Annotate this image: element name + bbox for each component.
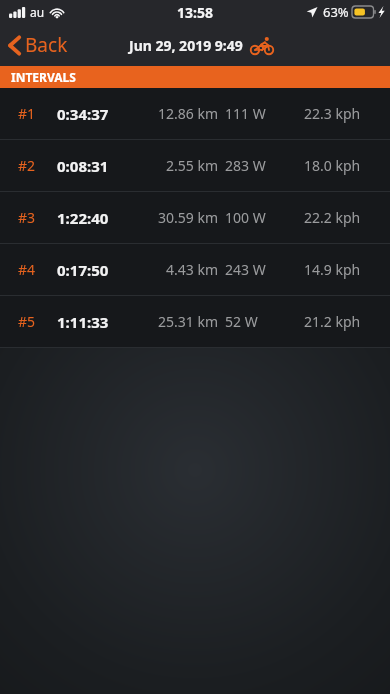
staticText: #4 bbox=[18, 260, 36, 279]
button[interactable]: #4 bbox=[0, 244, 390, 296]
staticText: 0:34:37 bbox=[57, 104, 109, 124]
staticText: 22.2 kph bbox=[304, 208, 361, 227]
staticText: 111 W bbox=[225, 104, 266, 123]
staticText: 52 W bbox=[225, 312, 258, 331]
staticText: #3 bbox=[18, 208, 36, 227]
button[interactable]: #2 bbox=[0, 140, 390, 192]
staticText: 25.31 km bbox=[158, 312, 218, 331]
staticText: 30.59 km bbox=[158, 208, 218, 227]
staticText: 13:58 bbox=[177, 3, 213, 22]
staticText: Jun 29, 2019 9:49 bbox=[129, 36, 243, 55]
button[interactable]: #5 bbox=[0, 296, 390, 348]
staticText: 22.3 kph bbox=[304, 104, 361, 123]
button[interactable]: #1 bbox=[0, 88, 390, 140]
staticText: 18.0 kph bbox=[304, 156, 361, 175]
staticText: #1 bbox=[18, 104, 36, 123]
staticText: 283 W bbox=[225, 156, 266, 175]
staticText: INTERVALS bbox=[11, 69, 76, 85]
staticText: 100 W bbox=[225, 208, 266, 227]
staticText: 1:22:40 bbox=[57, 208, 109, 228]
staticText: #5 bbox=[18, 312, 36, 331]
button[interactable]: #3 bbox=[0, 192, 390, 244]
staticText: 12.86 km bbox=[158, 104, 218, 123]
staticText: 63% bbox=[323, 3, 349, 21]
staticText: 2.55 km bbox=[166, 156, 218, 175]
staticText: 14.9 kph bbox=[304, 260, 361, 279]
button[interactable]: Back bbox=[0, 27, 78, 63]
staticText: 0:08:31 bbox=[57, 156, 109, 176]
staticText: 21.2 kph bbox=[304, 312, 361, 331]
staticText: 1:11:33 bbox=[57, 312, 109, 332]
staticText: Back bbox=[25, 32, 68, 58]
staticText: 243 W bbox=[225, 260, 266, 279]
staticText: #2 bbox=[18, 156, 36, 175]
staticText: au bbox=[30, 4, 45, 20]
staticText: 0:17:50 bbox=[57, 260, 109, 280]
staticText: 4.43 km bbox=[166, 260, 218, 279]
